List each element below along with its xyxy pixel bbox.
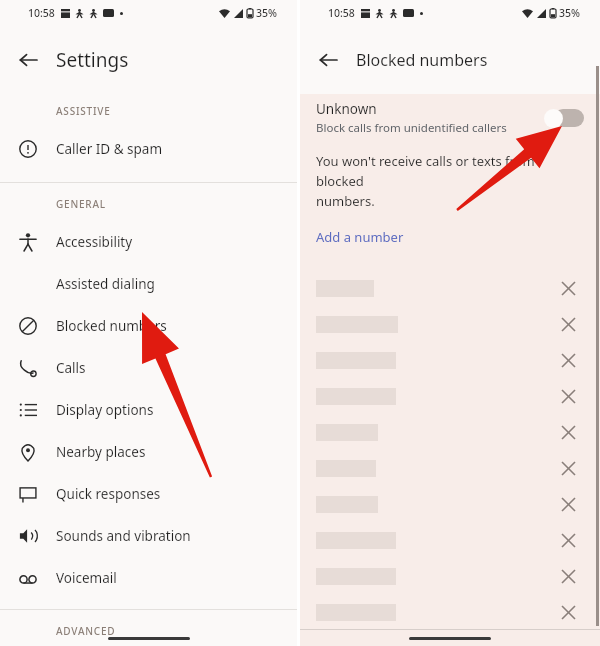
button[interactable]: Remove blocked number	[550, 342, 586, 378]
button[interactable]: Unknown	[300, 94, 600, 142]
button[interactable]: Remove blocked number	[550, 414, 586, 450]
staticText: Assisted dialing	[56, 275, 155, 293]
staticText: Voicemail	[56, 569, 117, 587]
button[interactable]: Display options	[0, 389, 297, 431]
staticText: Quick responses	[56, 485, 161, 503]
button[interactable]: Assisted dialing	[0, 263, 297, 305]
staticText: 35%	[256, 6, 277, 20]
button[interactable]: Remove blocked number	[300, 558, 600, 594]
staticText: ASSISTIVE	[56, 104, 111, 118]
button[interactable]: Remove blocked number	[550, 270, 586, 306]
staticText: Blocked numbers	[356, 49, 488, 71]
button[interactable]: Accessibility	[0, 221, 297, 263]
button[interactable]: Caller ID & spam	[0, 128, 297, 170]
button[interactable]: Quick responses	[0, 473, 297, 515]
button[interactable]: Remove blocked number	[300, 522, 600, 558]
staticText: 35%	[559, 6, 580, 20]
staticText: Add a number	[316, 228, 404, 246]
button[interactable]: Remove blocked number	[300, 594, 600, 630]
button[interactable]: Remove blocked number	[300, 378, 600, 414]
staticText: 10:58	[28, 6, 55, 20]
button[interactable]: Back	[300, 40, 356, 80]
button[interactable]: Remove blocked number	[550, 594, 586, 630]
button[interactable]: Sounds and vibration	[0, 515, 297, 557]
button[interactable]: Remove blocked number	[300, 306, 600, 342]
button[interactable]: Remove blocked number	[300, 414, 600, 450]
staticText: Caller ID & spam	[56, 140, 163, 158]
button[interactable]: Remove blocked number	[300, 342, 600, 378]
button[interactable]: Remove blocked number	[550, 450, 586, 486]
staticText: Display options	[56, 401, 154, 419]
button[interactable]: Remove blocked number	[550, 486, 586, 522]
staticText: Nearby places	[56, 443, 146, 461]
staticText: You won't receive calls or texts from bl…	[316, 152, 580, 210]
staticText: Accessibility	[56, 233, 133, 251]
button[interactable]: Back	[0, 40, 56, 80]
button[interactable]: Block unknown callers toggle	[544, 107, 584, 129]
button[interactable]: Blocked numbers	[0, 305, 297, 347]
staticText: GENERAL	[56, 197, 106, 211]
button[interactable]: Remove blocked number	[300, 270, 600, 306]
button[interactable]: Add a number	[316, 224, 404, 250]
staticText: Settings	[56, 47, 129, 73]
staticText: Blocked numbers	[56, 317, 167, 335]
button[interactable]: Voicemail	[0, 557, 297, 599]
staticText: Unknown	[316, 100, 377, 118]
button[interactable]: Remove blocked number	[550, 306, 586, 342]
button[interactable]: Remove blocked number	[550, 558, 586, 594]
staticText: ADVANCED	[56, 624, 116, 636]
button[interactable]: Calls	[0, 347, 297, 389]
button[interactable]: Remove blocked number	[550, 522, 586, 558]
staticText: Sounds and vibration	[56, 527, 191, 545]
staticText: Block calls from unidentified callers	[316, 120, 507, 136]
button[interactable]: Remove blocked number	[550, 378, 586, 414]
button[interactable]: Remove blocked number	[300, 450, 600, 486]
staticText: 10:58	[328, 6, 355, 20]
staticText: Calls	[56, 359, 86, 377]
button[interactable]: Nearby places	[0, 431, 297, 473]
button[interactable]: Remove blocked number	[300, 486, 600, 522]
